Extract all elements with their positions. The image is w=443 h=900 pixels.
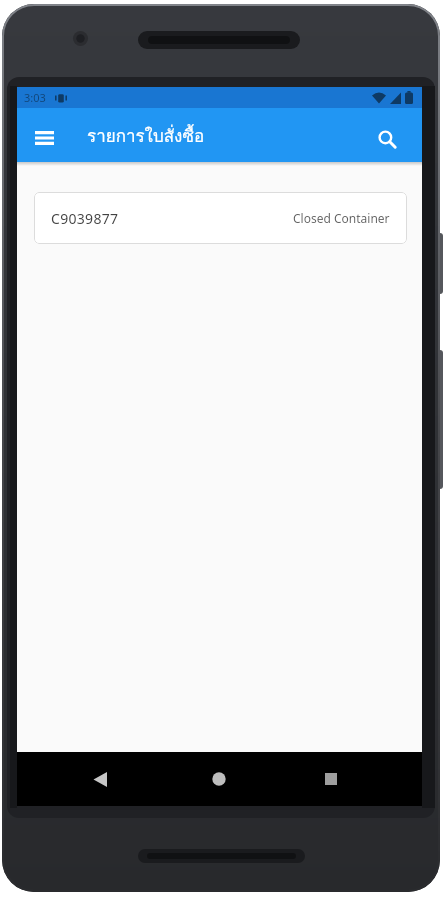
button[interactable] <box>307 752 355 806</box>
button[interactable] <box>195 752 243 806</box>
button[interactable] <box>364 108 412 162</box>
button[interactable] <box>76 752 124 806</box>
staticText: Closed Container <box>293 210 390 226</box>
staticText: 3:03 <box>24 90 46 105</box>
button[interactable]: C9039877 <box>34 192 407 244</box>
staticText: C9039877 <box>51 209 119 228</box>
button[interactable] <box>17 108 71 162</box>
staticText: รายการใบสั่งซื้อ <box>87 122 205 149</box>
